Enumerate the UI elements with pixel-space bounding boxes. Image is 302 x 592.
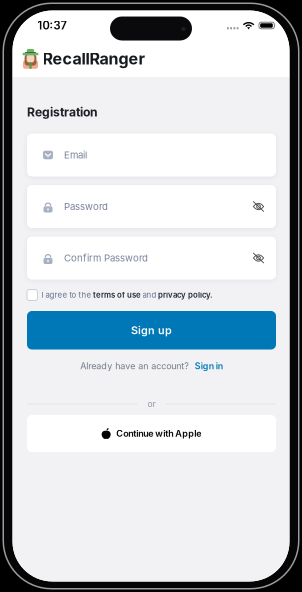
- button[interactable]: Sign in: [195, 361, 223, 371]
- staticText: Registration: [27, 105, 98, 119]
- staticText: I agree to the: [42, 290, 92, 300]
- button[interactable]: Password: [27, 185, 276, 228]
- staticText: Continue with Apple: [116, 428, 201, 439]
- staticText: RecallRanger: [42, 49, 145, 68]
- button[interactable]: Show password: [252, 201, 264, 212]
- staticText: or: [147, 399, 155, 409]
- button[interactable]: Email: [27, 133, 276, 176]
- staticText: Already have an account?: [80, 361, 189, 371]
- button[interactable]: Agree to the terms of use and privacy po…: [27, 290, 37, 300]
- staticText: Sign up: [131, 324, 172, 337]
- staticText: terms of use: [93, 290, 141, 300]
- button[interactable]: terms of use: [93, 290, 141, 300]
- staticText: Email: [64, 149, 87, 161]
- staticText: Sign in: [195, 361, 223, 371]
- button[interactable]: Continue with Apple: [27, 415, 276, 452]
- button[interactable]: Show confirm password: [252, 252, 264, 263]
- button[interactable]: Confirm Password: [27, 236, 276, 279]
- button[interactable]: Sign up: [27, 311, 276, 349]
- staticText: Password: [64, 201, 108, 212]
- staticText: privacy policy.: [158, 290, 212, 300]
- staticText: 10:37: [37, 19, 66, 32]
- button[interactable]: privacy policy.: [158, 290, 212, 300]
- staticText: Confirm Password: [64, 252, 148, 264]
- staticText: and: [143, 290, 157, 300]
